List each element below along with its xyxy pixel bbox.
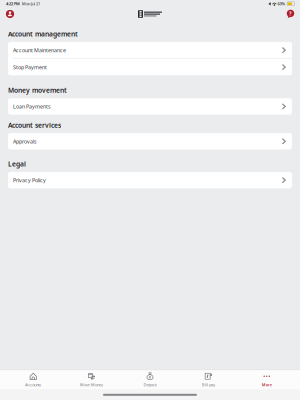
staticText: Legal [8, 160, 26, 168]
staticText: Deposit [143, 382, 156, 387]
button[interactable]: Privacy Policy [8, 172, 292, 188]
button[interactable]: Accounts [4, 370, 62, 390]
button[interactable]: Bill pay [179, 370, 238, 390]
staticText: Approvals [13, 138, 37, 145]
button[interactable]: Profile [4, 7, 16, 20]
button[interactable]: Account Maintenance [8, 42, 292, 58]
staticText: More [262, 382, 272, 387]
staticText: Privacy Policy [13, 177, 46, 184]
staticText: Money movement [8, 86, 67, 95]
staticText: Mon Jul 21 [20, 1, 40, 6]
button[interactable]: Move Money [62, 370, 121, 390]
button[interactable]: More [238, 370, 296, 390]
staticText: Loan Payments [13, 103, 51, 110]
staticText: Account management [8, 29, 78, 38]
button[interactable]: Loan Payments [8, 98, 292, 115]
staticText: Move Money [80, 382, 103, 387]
staticText: ? [289, 10, 292, 17]
staticText: 63% [278, 1, 286, 6]
staticText: Stop Payment [13, 64, 47, 71]
staticText: 4:22 PM [6, 1, 20, 6]
staticText: Account services [8, 121, 61, 130]
button[interactable]: Approvals [8, 133, 292, 150]
button[interactable]: Deposit [121, 370, 179, 390]
button[interactable]: Stop Payment [8, 59, 292, 75]
staticText: Account Maintenance [13, 47, 66, 54]
staticText: Bill pay [202, 382, 215, 387]
staticText: Accounts [25, 382, 41, 387]
button[interactable]: Help [284, 7, 297, 20]
